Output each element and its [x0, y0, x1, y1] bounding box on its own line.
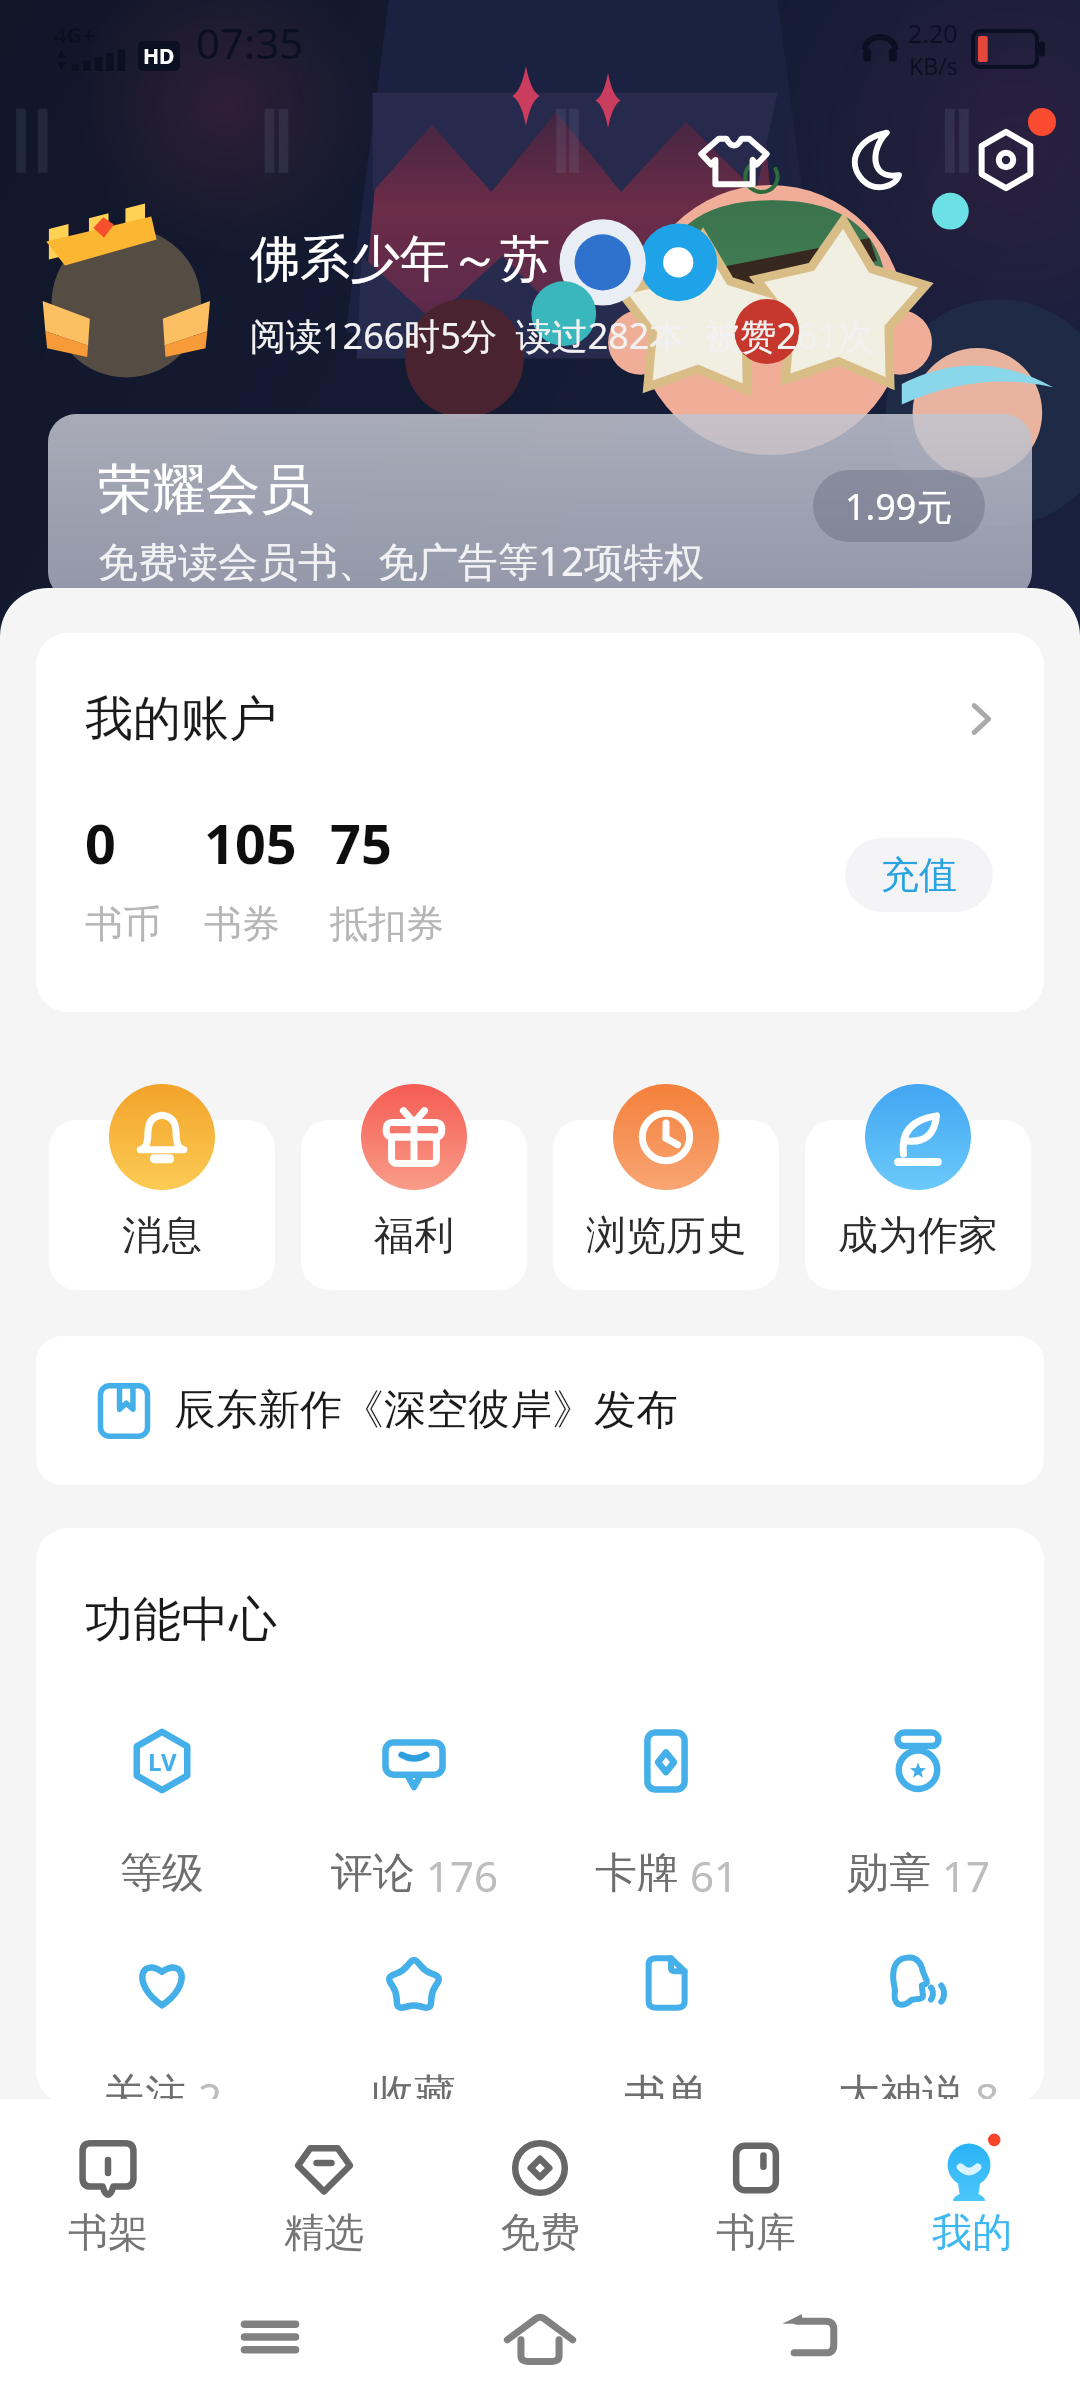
- button[interactable]: 辰东新作《深空彼岸》发布: [36, 1336, 1044, 1485]
- staticText: 书库: [716, 2207, 796, 2257]
- staticText: HD: [143, 42, 175, 71]
- staticText: 福利: [374, 1210, 454, 1260]
- button[interactable]: 书单: [554, 1950, 778, 2099]
- staticText: 我的账户: [85, 689, 277, 749]
- staticText: 4G+: [54, 19, 96, 49]
- staticText: 1.99元: [845, 482, 953, 531]
- staticText: 书架: [68, 2207, 148, 2257]
- staticText: 免费: [500, 2207, 580, 2257]
- staticText: 105: [204, 806, 297, 880]
- staticText: 成为作家: [838, 1210, 998, 1260]
- button[interactable]: 充值: [845, 838, 993, 912]
- staticText: 精选: [284, 2207, 364, 2257]
- staticText: 176: [415, 1847, 498, 1904]
- button[interactable]: 浏览历史: [553, 1120, 779, 1290]
- staticText: 75: [330, 806, 392, 880]
- button[interactable]: 主页: [495, 2292, 585, 2382]
- staticText: 8: [964, 2069, 999, 2099]
- button[interactable]: 卡牌: [554, 1728, 778, 1904]
- button[interactable]: 夜间模式: [822, 112, 918, 208]
- button[interactable]: 我的: [864, 2099, 1080, 2254]
- button[interactable]: 免费: [432, 2099, 648, 2254]
- staticText: 辰东新作《深空彼岸》发布: [174, 1384, 678, 1437]
- button[interactable]: 评论: [302, 1728, 526, 1904]
- staticText: 07:35: [196, 14, 304, 71]
- button[interactable]: 成为作家: [805, 1120, 1031, 1290]
- staticText: 17: [931, 1847, 990, 1904]
- button[interactable]: 荣耀会员: [48, 414, 1032, 600]
- staticText: 评论: [331, 1847, 415, 1900]
- staticText: 功能中心: [85, 1590, 277, 1650]
- staticText: 0: [85, 806, 116, 880]
- staticText: 大神说: [838, 2069, 964, 2099]
- staticText: 阅读1266时5分 读过282本 被赞261次: [250, 311, 874, 360]
- button[interactable]: 书架: [0, 2099, 216, 2254]
- button[interactable]: 1.99元: [813, 470, 985, 542]
- staticText: 书单: [624, 2069, 708, 2099]
- staticText: LV: [148, 1745, 177, 1778]
- staticText: 我的: [932, 2207, 1012, 2257]
- button[interactable]: 书库: [648, 2099, 864, 2254]
- staticText: 充值: [881, 851, 957, 899]
- staticText: 荣耀会员: [98, 456, 314, 524]
- staticText: 2: [187, 2069, 222, 2099]
- staticText: 浏览历史: [586, 1210, 746, 1260]
- staticText: 卡牌: [595, 1847, 679, 1900]
- staticText: 免费读会员书、免广告等12项特权: [98, 533, 704, 588]
- button[interactable]: 福利: [301, 1120, 527, 1290]
- staticText: 关注: [103, 2069, 187, 2099]
- staticText: 消息: [122, 1210, 202, 1260]
- staticText: 等级: [120, 1847, 204, 1900]
- staticText: 收藏: [372, 2069, 456, 2099]
- button[interactable]: 大神说: [806, 1950, 1030, 2099]
- button[interactable]: 头像: [40, 196, 218, 374]
- button[interactable]: 主题装扮: [686, 112, 782, 208]
- button[interactable]: 精选: [216, 2099, 432, 2254]
- button[interactable]: 返回: [765, 2292, 855, 2382]
- staticText: 佛系少年～苏: [250, 228, 550, 291]
- staticText: 2.20: [908, 16, 958, 50]
- button[interactable]: 消息: [49, 1120, 275, 1290]
- staticText: 勋章: [847, 1847, 931, 1900]
- button[interactable]: 设置: [958, 112, 1054, 208]
- button[interactable]: LV: [50, 1728, 274, 1900]
- button[interactable]: 勋章: [806, 1728, 1030, 1904]
- staticText: 抵扣券: [330, 900, 444, 948]
- button[interactable]: 收藏: [302, 1950, 526, 2099]
- staticText: KB/s: [909, 50, 958, 81]
- button[interactable]: 关注: [50, 1950, 274, 2099]
- button[interactable]: 我的账户: [36, 633, 1044, 1012]
- staticText: 61: [679, 1847, 738, 1904]
- staticText: 书币: [85, 900, 161, 948]
- button[interactable]: 最近任务: [225, 2292, 315, 2382]
- staticText: 书券: [204, 900, 280, 948]
